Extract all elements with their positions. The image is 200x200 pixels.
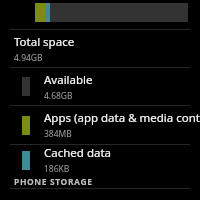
staticText: Total space [14, 34, 75, 50]
staticText: Available [44, 72, 93, 88]
staticText: PHONE STORAGE [14, 176, 93, 188]
staticText: Cached data [44, 145, 112, 161]
button[interactable]: Apps (app data & media content) [0, 106, 200, 144]
staticText: 4.68GB [44, 90, 73, 102]
button[interactable]: Available [0, 68, 200, 105]
staticText: 384MB [44, 128, 72, 140]
staticText: 4.94GB [14, 52, 43, 64]
staticText: 186KB [44, 163, 70, 175]
button[interactable]: Total space [0, 30, 200, 67]
staticText: Apps (app data & media content) [44, 110, 200, 126]
button[interactable]: Cached data [0, 145, 200, 175]
